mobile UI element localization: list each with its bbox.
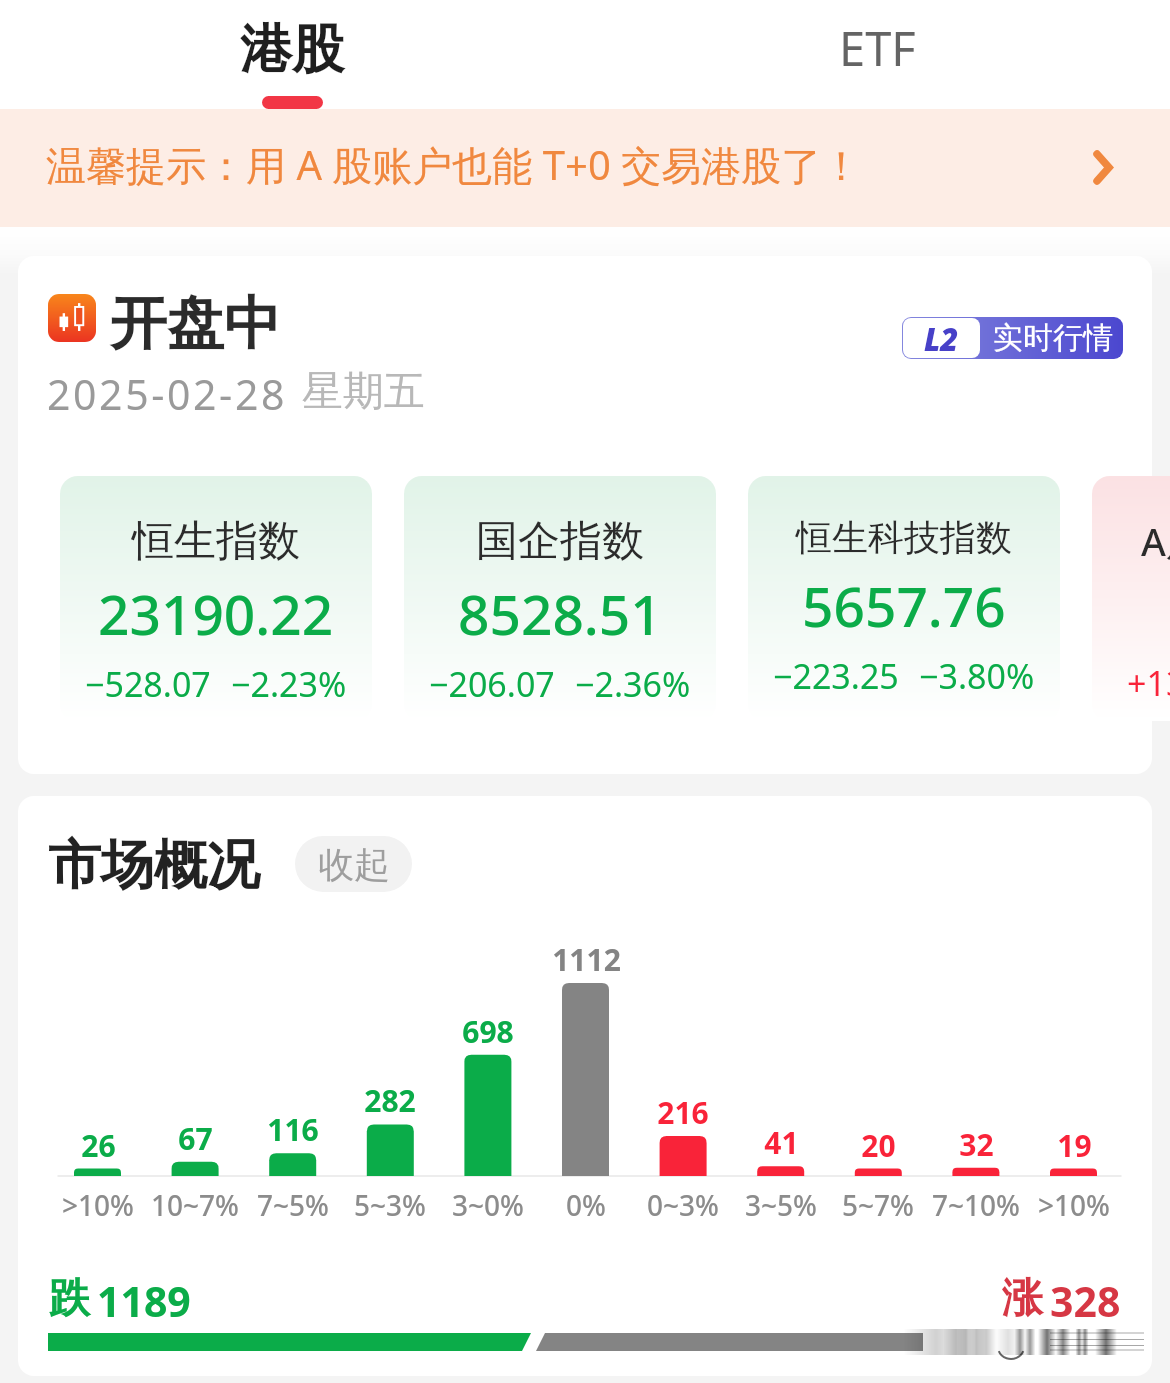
button[interactable]: 港股 — [162, 0, 422, 109]
staticText: −528.07 — [85, 661, 211, 707]
staticText: 2025-02-28 — [47, 366, 288, 422]
button[interactable]: L2 — [902, 317, 1123, 359]
staticText: 3~5% — [745, 1186, 817, 1224]
staticText: 国企指数 — [476, 515, 644, 568]
staticText: 港股 — [240, 17, 344, 83]
staticText: 收起 — [318, 842, 390, 887]
staticText: A股主要指数 — [1141, 515, 1170, 567]
staticText: 67 — [178, 1118, 213, 1159]
other: More — [1094, 151, 1112, 184]
staticText: 10~7% — [151, 1186, 239, 1224]
staticText: 跌 — [49, 1273, 90, 1325]
staticText: 20 — [861, 1125, 896, 1166]
staticText: >10% — [62, 1186, 134, 1224]
staticText: 41 — [764, 1122, 799, 1163]
staticText: 5~7% — [842, 1186, 914, 1224]
staticText: 1112 — [552, 939, 621, 980]
staticText: 7~5% — [257, 1186, 329, 1224]
staticText: 19 — [1057, 1125, 1092, 1166]
staticText: 282 — [364, 1080, 416, 1121]
staticText: 7~10% — [932, 1186, 1020, 1224]
staticText: 市场概况 — [48, 832, 260, 899]
staticText: 116 — [267, 1109, 319, 1150]
staticText: 温馨提示：用 A 股账户也能 T+0 交易港股了！ — [46, 137, 862, 192]
staticText: +13.35 — [1127, 660, 1170, 706]
staticText: 23190.22 — [98, 576, 334, 651]
staticText: 5~3% — [354, 1186, 426, 1224]
staticText: −223.25 — [773, 653, 899, 699]
staticText: 698 — [462, 1011, 514, 1052]
button[interactable]: 恒生指数 — [60, 476, 372, 721]
staticText: 5657.76 — [802, 568, 1006, 643]
staticText: >10% — [1038, 1186, 1110, 1224]
staticText: L2 — [924, 318, 959, 358]
staticText: −2.23% — [231, 661, 347, 707]
staticText: 26 — [81, 1125, 116, 1166]
staticText: 3~0% — [452, 1186, 524, 1224]
staticText: ETF — [839, 16, 916, 80]
staticText: −3.80% — [919, 653, 1035, 699]
staticText: 8528.51 — [458, 576, 662, 651]
other: Market status — [48, 294, 96, 342]
staticText: 恒生科技指数 — [796, 515, 1012, 560]
staticText: 328 — [1050, 1273, 1121, 1329]
staticText: 星期五 — [302, 366, 425, 418]
staticText: 216 — [657, 1092, 709, 1133]
staticText: 实时行情 — [993, 319, 1113, 357]
staticText: −206.07 — [429, 661, 555, 707]
button[interactable] — [0, 109, 1170, 227]
button[interactable]: A股主要指数 — [1092, 476, 1170, 721]
button[interactable]: 国企指数 — [404, 476, 716, 721]
staticText: −2.36% — [575, 661, 691, 707]
button[interactable]: 收起 — [295, 836, 412, 892]
staticText: 恒生指数 — [132, 515, 300, 568]
staticText: 涨 — [1002, 1273, 1043, 1325]
staticText: 32 — [959, 1124, 994, 1165]
staticText: 1189 — [97, 1273, 191, 1329]
staticText: 0~3% — [647, 1186, 719, 1224]
staticText: 开盘中 — [110, 288, 281, 360]
staticText: 0% — [566, 1186, 606, 1224]
button[interactable]: ETF — [747, 0, 1007, 109]
button[interactable]: 恒生科技指数 — [748, 476, 1060, 721]
